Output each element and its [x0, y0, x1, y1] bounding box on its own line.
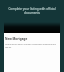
staticText: New Mortgage — [5, 37, 28, 41]
staticText: Lorem ipsum dolor sit amet consectetur a… — [5, 43, 59, 49]
staticText: Complete your listing with official docu… — [4, 7, 60, 15]
